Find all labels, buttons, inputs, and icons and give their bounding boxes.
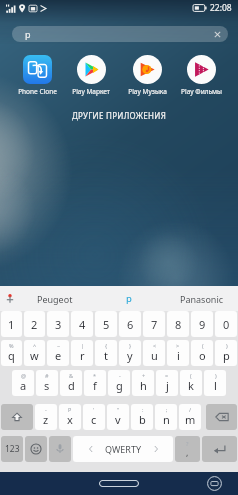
staticText: h: [140, 378, 147, 393]
staticText: 1: [8, 317, 15, 332]
staticText: Peugeot: [37, 293, 73, 305]
button[interactable]: Hide keyboard: [207, 476, 222, 491]
staticText: ;: [166, 406, 168, 413]
staticText: f: [93, 378, 97, 393]
button[interactable]: Shift: [1, 404, 33, 430]
button[interactable]: Play Музыка: [120, 54, 174, 96]
staticText: u: [151, 348, 158, 363]
button[interactable]: /: [179, 404, 201, 430]
button[interactable]: ': [83, 404, 105, 430]
button[interactable]: Numbers: [1, 436, 23, 462]
staticText: ): [215, 372, 217, 379]
staticText: -: [45, 406, 47, 413]
staticText: %: [9, 342, 14, 349]
staticText: ): [226, 342, 228, 349]
button[interactable]: &: [60, 370, 82, 396]
staticText: *: [93, 372, 97, 379]
staticText: x: [67, 412, 73, 427]
staticText: (: [202, 342, 204, 349]
button[interactable]: +: [132, 370, 154, 396]
button[interactable]: 0: [215, 311, 237, 337]
button[interactable]: p: [92, 286, 165, 311]
staticText: ': [93, 406, 95, 413]
button[interactable]: Panasonic: [165, 286, 238, 311]
button[interactable]: ": [107, 404, 129, 430]
staticText: +: [142, 372, 146, 379]
staticText: g: [116, 378, 123, 393]
staticText: y: [127, 348, 133, 363]
staticText: /: [189, 406, 192, 413]
staticText: P: [68, 406, 72, 413]
staticText: <: [153, 342, 157, 349]
staticText: Play Фильмы: [181, 87, 222, 96]
staticText: ?: [186, 440, 189, 447]
staticText: w: [30, 348, 39, 363]
staticText: q: [8, 348, 15, 363]
button[interactable]: >: [167, 340, 189, 366]
button[interactable]: 8: [167, 311, 189, 337]
button[interactable]: (: [180, 370, 202, 396]
button[interactable]: ^: [24, 340, 45, 366]
button[interactable]: P: [59, 404, 81, 430]
button[interactable]: (: [191, 340, 213, 366]
staticText: 8: [175, 317, 182, 332]
staticText: ~: [57, 342, 61, 349]
button[interactable]: %: [1, 340, 22, 366]
button[interactable]: 4: [71, 311, 93, 337]
button[interactable]: ~: [47, 340, 69, 366]
button[interactable]: 9: [191, 311, 213, 337]
staticText: |: [81, 342, 85, 349]
button[interactable]: =: [156, 370, 178, 396]
button[interactable]: @: [12, 370, 34, 396]
button[interactable]: ): [204, 370, 226, 396]
button[interactable]: Comma: [175, 436, 200, 462]
staticText: р: [25, 28, 31, 40]
button[interactable]: Play Маркет: [64, 54, 118, 96]
button[interactable]: ;: [155, 404, 177, 430]
button[interactable]: Enter: [202, 436, 237, 462]
button[interactable]: #: [36, 370, 58, 396]
button[interactable]: 1: [1, 311, 22, 337]
button[interactable]: Emoji: [25, 436, 47, 462]
button[interactable]: Phone Clone: [10, 54, 64, 96]
staticText: ,: [186, 446, 189, 458]
button[interactable]: -: [35, 404, 57, 430]
staticText: 7: [151, 317, 158, 332]
staticText: z: [43, 412, 49, 427]
staticText: 22:08: [210, 2, 232, 14]
button[interactable]: Voice input: [49, 436, 71, 462]
staticText: ДРУГИЕ ПРИЛОЖЕНИЯ: [0, 110, 238, 121]
button[interactable]: Backspace: [206, 404, 237, 430]
button[interactable]: Clear search: [213, 30, 222, 39]
button[interactable]: {: [95, 340, 117, 366]
button[interactable]: 3: [47, 311, 69, 337]
button[interactable]: Play Фильмы: [174, 54, 228, 96]
button[interactable]: Keyboard menu: [5, 294, 15, 304]
button[interactable]: Peugeot: [18, 286, 92, 311]
button[interactable]: 6: [119, 311, 141, 337]
button[interactable]: -: [108, 370, 130, 396]
button[interactable]: ): [215, 340, 237, 366]
button[interactable]: |: [71, 340, 93, 366]
staticText: }: [129, 342, 132, 349]
staticText: m: [185, 412, 196, 427]
staticText: 2: [31, 317, 38, 332]
staticText: e: [55, 348, 62, 363]
button[interactable]: QWERTY: [73, 436, 173, 462]
button[interactable]: 2: [24, 311, 45, 337]
staticText: d: [68, 378, 75, 393]
button[interactable]: }: [119, 340, 141, 366]
button[interactable]: р: [12, 26, 228, 42]
staticText: i: [177, 348, 180, 363]
button[interactable]: 5: [95, 311, 117, 337]
staticText: j: [166, 378, 169, 393]
button[interactable]: <: [143, 340, 165, 366]
button[interactable]: 7: [143, 311, 165, 337]
staticText: -: [119, 372, 121, 379]
button[interactable]: :: [131, 404, 153, 430]
button[interactable]: Home: [99, 480, 139, 487]
staticText: 9: [199, 317, 206, 332]
staticText: 0: [223, 317, 230, 332]
staticText: {: [105, 342, 108, 349]
button[interactable]: *: [84, 370, 106, 396]
